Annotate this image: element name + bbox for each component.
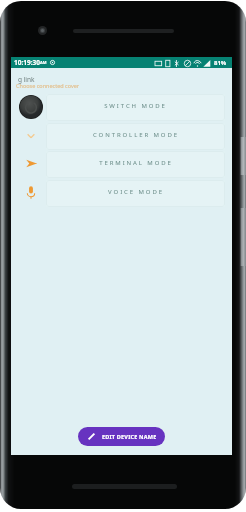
staticText: g link xyxy=(18,75,35,84)
staticText: Choose connected cover xyxy=(16,82,80,89)
staticText: CONTROLLER MODE xyxy=(93,131,179,139)
other: Voice mode xyxy=(27,186,35,199)
staticText: TERMINAL MODE xyxy=(99,159,173,167)
button[interactable]: TERMINAL MODE xyxy=(46,151,225,178)
other: Terminal mode xyxy=(26,158,37,169)
button[interactable]: SWITCH MODE xyxy=(46,94,225,121)
staticText: AM xyxy=(40,60,47,65)
other: Switch mode xyxy=(19,95,43,119)
button[interactable]: EDIT DEVICE NAME xyxy=(78,427,165,446)
staticText: 10:19:30 xyxy=(14,58,40,67)
staticText: EDIT DEVICE NAME xyxy=(102,433,157,440)
button[interactable]: VOICE MODE xyxy=(46,180,225,207)
other: Controller mode xyxy=(27,132,35,140)
staticText: 81% xyxy=(214,59,227,67)
staticText: VOICE MODE xyxy=(108,188,164,196)
staticText: SWITCH MODE xyxy=(104,102,167,110)
button[interactable]: CONTROLLER MODE xyxy=(46,123,225,150)
